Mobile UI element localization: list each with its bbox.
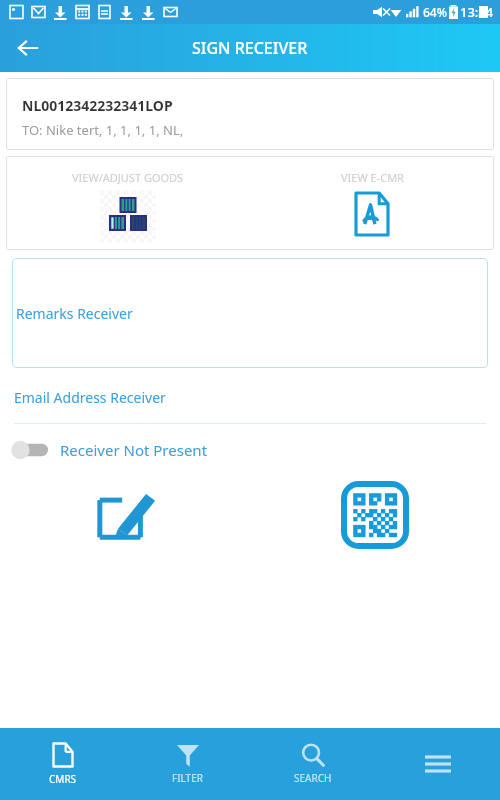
staticText: CMRS (49, 772, 77, 786)
staticText: NL0012342232341LOP (22, 96, 173, 115)
button[interactable]: FILTER (125, 728, 250, 800)
staticText: Remarks Receiver (16, 304, 133, 323)
button[interactable]: Receiver Not Present (10, 440, 208, 460)
staticText: TO: Nike tert, 1, 1, 1, 1, NL, (22, 121, 184, 139)
staticText: Email Address Receiver (14, 388, 166, 407)
button[interactable]: NL0012342232341LOP (6, 78, 494, 150)
button[interactable]: Scan QR code (332, 472, 418, 558)
button[interactable]: Remarks Receiver (12, 258, 488, 368)
button[interactable]: Email Address Receiver (14, 388, 486, 424)
staticText: FILTER (172, 771, 203, 785)
button[interactable]: CMRS (0, 728, 125, 800)
staticText: 64% (423, 4, 447, 20)
staticText: VIEW/ADJUST GOODS (72, 170, 184, 185)
button[interactable]: SEARCH (250, 728, 375, 800)
button[interactable]: VIEW E-CMR (250, 156, 494, 250)
button[interactable]: Menu (375, 728, 500, 800)
staticText: VIEW E-CMR (341, 170, 404, 185)
button[interactable]: VIEW/ADJUST GOODS (6, 156, 250, 250)
button[interactable]: Back (8, 28, 48, 68)
button[interactable]: Sign (82, 472, 168, 558)
staticText: 13:44 (460, 3, 494, 21)
staticText: SEARCH (294, 771, 332, 785)
staticText: SIGN RECEIVER (192, 37, 308, 59)
staticText: Receiver Not Present (60, 440, 208, 460)
